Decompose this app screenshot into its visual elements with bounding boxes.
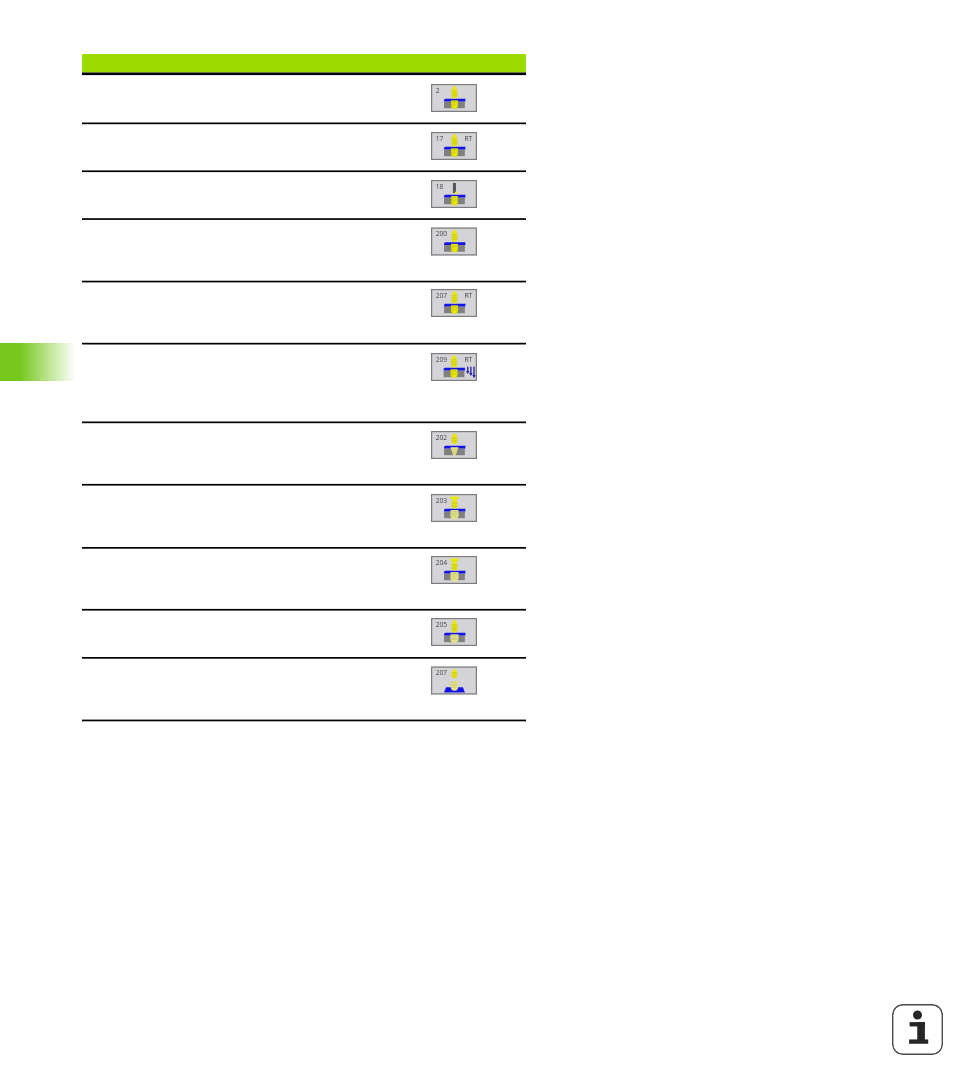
button[interactable]: Cycle 17 bbox=[82, 123, 526, 171]
button[interactable]: Cycle 209 bbox=[82, 343, 526, 422]
button[interactable]: Cycle 200 bbox=[82, 218, 526, 281]
button[interactable]: Cycle 207 bbox=[82, 657, 526, 720]
button[interactable]: Cycle 202 bbox=[82, 422, 526, 484]
button[interactable]: Cycle overview header bbox=[82, 54, 526, 75]
button[interactable]: Cycle 204 bbox=[82, 547, 526, 609]
button[interactable]: Cycle 207 bbox=[82, 281, 526, 343]
button[interactable]: Cycle 203 bbox=[82, 484, 526, 547]
button[interactable]: Cycle 18 bbox=[82, 170, 526, 218]
button[interactable]: Cycle 205 bbox=[82, 609, 526, 657]
button[interactable]: Information bbox=[892, 1004, 943, 1055]
button[interactable]: Cycle 2 bbox=[82, 75, 526, 123]
